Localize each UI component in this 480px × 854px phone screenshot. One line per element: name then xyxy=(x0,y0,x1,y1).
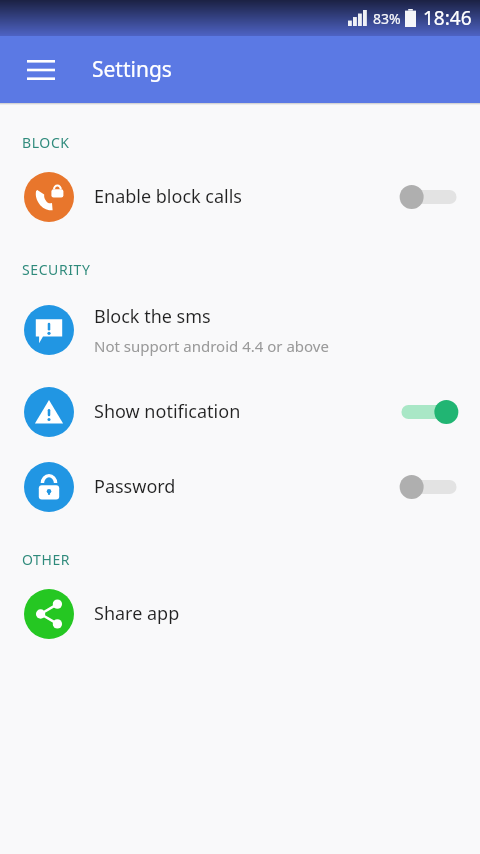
staticText: Show notification xyxy=(94,399,241,424)
button[interactable]: Toggle off xyxy=(400,470,458,504)
button[interactable]: Toggle on xyxy=(400,395,458,429)
button[interactable]: Show notification xyxy=(0,374,480,449)
staticText: Password xyxy=(94,474,176,499)
button[interactable]: Open navigation menu xyxy=(18,47,64,93)
staticText: Enable block calls xyxy=(94,184,242,209)
staticText: Block the sms xyxy=(94,304,211,329)
button[interactable]: Block the sms xyxy=(0,286,480,374)
button[interactable]: Share app xyxy=(0,576,480,651)
staticText: BLOCK xyxy=(22,133,70,152)
staticText: 83% xyxy=(373,9,401,28)
button[interactable]: Toggle off xyxy=(400,180,458,214)
staticText: 18:46 xyxy=(423,5,472,31)
staticText: SECURITY xyxy=(22,260,91,279)
button[interactable]: Enable block calls xyxy=(0,159,480,234)
staticText: Settings xyxy=(92,55,172,84)
button[interactable]: Password xyxy=(0,449,480,524)
staticText: Not support android 4.4 or above xyxy=(94,336,329,356)
staticText: Share app xyxy=(94,601,180,626)
staticText: OTHER xyxy=(22,550,71,569)
